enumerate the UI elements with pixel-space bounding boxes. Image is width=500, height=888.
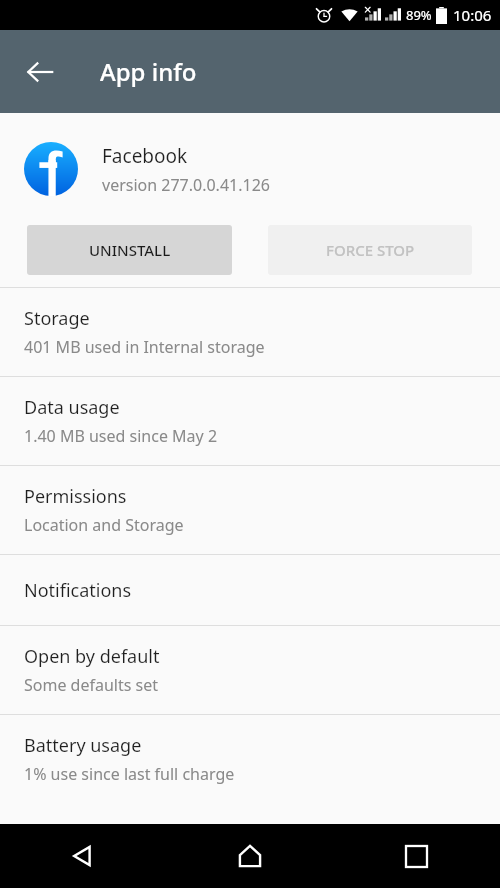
button[interactable]: Open by default	[0, 626, 500, 714]
staticText: Location and Storage	[24, 514, 184, 536]
staticText: Notifications	[24, 578, 132, 603]
button[interactable]: Back	[0, 824, 166, 888]
button[interactable]: Notifications	[0, 555, 500, 625]
staticText: 401 MB used in Internal storage	[24, 336, 265, 358]
staticText: Some defaults set	[24, 674, 159, 696]
staticText: 1.40 MB used since May 2	[24, 425, 218, 447]
button[interactable]: Battery usage	[0, 715, 500, 803]
staticText: 89%	[406, 6, 432, 24]
button[interactable]: Storage	[0, 288, 500, 376]
button[interactable]: Recent apps	[333, 824, 500, 888]
button[interactable]: FORCE STOP	[268, 225, 472, 275]
button[interactable]: Home	[166, 824, 333, 888]
staticText: Data usage	[24, 395, 120, 420]
staticText: Battery usage	[24, 733, 142, 758]
button[interactable]: Facebook	[0, 113, 500, 225]
button[interactable]: Data usage	[0, 377, 500, 465]
staticText: version 277.0.0.41.126	[102, 174, 270, 196]
button[interactable]: Permissions	[0, 466, 500, 554]
button[interactable]: Back	[16, 48, 64, 96]
staticText: Facebook	[102, 143, 188, 169]
staticText: App info	[100, 55, 197, 88]
staticText: UNINSTALL	[89, 240, 171, 260]
staticText: FORCE STOP	[326, 240, 415, 260]
staticText: 10:06	[453, 5, 492, 25]
staticText: 1% use since last full charge	[24, 763, 235, 785]
staticText: Permissions	[24, 484, 127, 509]
staticText: Open by default	[24, 644, 160, 669]
staticText: Storage	[24, 306, 90, 331]
button[interactable]: UNINSTALL	[27, 225, 232, 275]
